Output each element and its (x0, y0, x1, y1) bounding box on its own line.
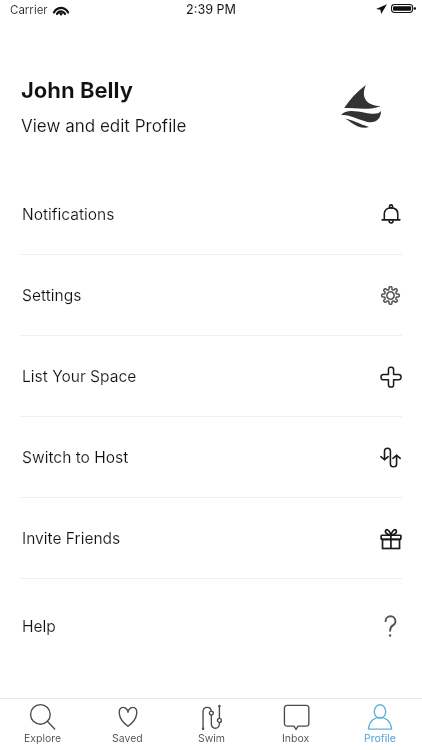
staticText: View and edit Profile (21, 116, 187, 137)
other: Invite Friends (380, 528, 401, 549)
staticText: Settings (22, 286, 82, 305)
other: Notifications (380, 204, 401, 225)
button[interactable]: Notifications (0, 174, 422, 255)
button[interactable]: Switch to Host (0, 417, 422, 498)
staticText: Notifications (22, 205, 115, 224)
button[interactable]: Saved (85, 699, 170, 750)
other: List Your Space (380, 366, 401, 387)
button[interactable]: Invite Friends (0, 498, 422, 579)
button[interactable]: Swim (170, 699, 254, 750)
staticText: Explore (24, 732, 62, 745)
staticText: Saved (112, 732, 143, 745)
staticText: 2:39 PM (186, 2, 236, 17)
button[interactable]: Settings (0, 255, 422, 336)
button[interactable]: Help (0, 579, 422, 660)
staticText: Inbox (282, 732, 310, 745)
other: Settings (380, 285, 401, 306)
staticText: Help (22, 617, 56, 636)
other: Switch to Host (380, 447, 401, 468)
other: Help (380, 616, 401, 637)
staticText: List Your Space (22, 367, 137, 386)
staticText: John Belly (21, 77, 134, 104)
staticText: Profile (364, 732, 396, 745)
button[interactable]: Profile (338, 699, 422, 750)
button[interactable]: Explore (0, 699, 85, 750)
staticText: Swim (198, 732, 226, 745)
staticText: Carrier (10, 3, 48, 17)
staticText: Switch to Host (22, 448, 129, 467)
staticText: Invite Friends (22, 529, 121, 548)
button[interactable]: Inbox (254, 699, 338, 750)
button[interactable]: List Your Space (0, 336, 422, 417)
